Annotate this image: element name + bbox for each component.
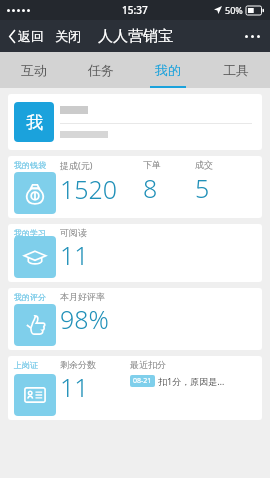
- staticText: 提成(元): [60, 159, 93, 171]
- staticText: 98%: [60, 302, 109, 336]
- staticText: 11: [60, 238, 89, 272]
- button[interactable]: 我的: [134, 52, 202, 88]
- staticText: 15:37: [122, 3, 148, 17]
- staticText: 可阅读: [60, 227, 87, 238]
- button[interactable]: 任务: [67, 52, 134, 88]
- button[interactable]: 上岗证: [8, 356, 262, 420]
- staticText: 互动: [21, 62, 47, 78]
- staticText: 我: [26, 112, 43, 133]
- staticText: 11: [60, 370, 89, 404]
- staticText: 50%: [225, 4, 243, 16]
- staticText: 我的评分: [14, 292, 46, 302]
- button[interactable]: More options: [235, 27, 270, 46]
- button[interactable]: 关闭: [53, 24, 83, 48]
- staticText: 1520: [60, 172, 118, 206]
- button[interactable]: 我的评分: [8, 288, 262, 350]
- staticText: 我的钱袋: [14, 160, 46, 170]
- staticText: 返回: [18, 28, 44, 44]
- staticText: 最近扣分: [130, 359, 166, 370]
- staticText: 剩余分数: [60, 359, 96, 370]
- staticText: 人人营销宝: [98, 27, 173, 46]
- staticText: 8: [143, 171, 158, 205]
- button[interactable]: 我的学习: [8, 224, 262, 282]
- staticText: 扣1分，原因是…: [158, 375, 225, 387]
- button[interactable]: 我: [8, 94, 262, 150]
- button[interactable]: 我的钱袋: [8, 156, 262, 218]
- staticText: 5: [195, 171, 210, 205]
- button[interactable]: 互动: [0, 52, 67, 88]
- staticText: 我的: [155, 62, 181, 78]
- staticText: 关闭: [55, 28, 81, 44]
- staticText: 上岗证: [14, 360, 38, 370]
- button[interactable]: 工具: [202, 52, 270, 88]
- staticText: 工具: [223, 62, 249, 78]
- staticText: 成交: [195, 159, 213, 170]
- staticText: 我的学习: [14, 228, 46, 238]
- button[interactable]: 返回: [7, 24, 46, 48]
- staticText: 本月好评率: [60, 291, 105, 302]
- staticText: 08-21: [133, 376, 152, 386]
- staticText: 下单: [143, 159, 161, 170]
- staticText: 任务: [88, 62, 114, 78]
